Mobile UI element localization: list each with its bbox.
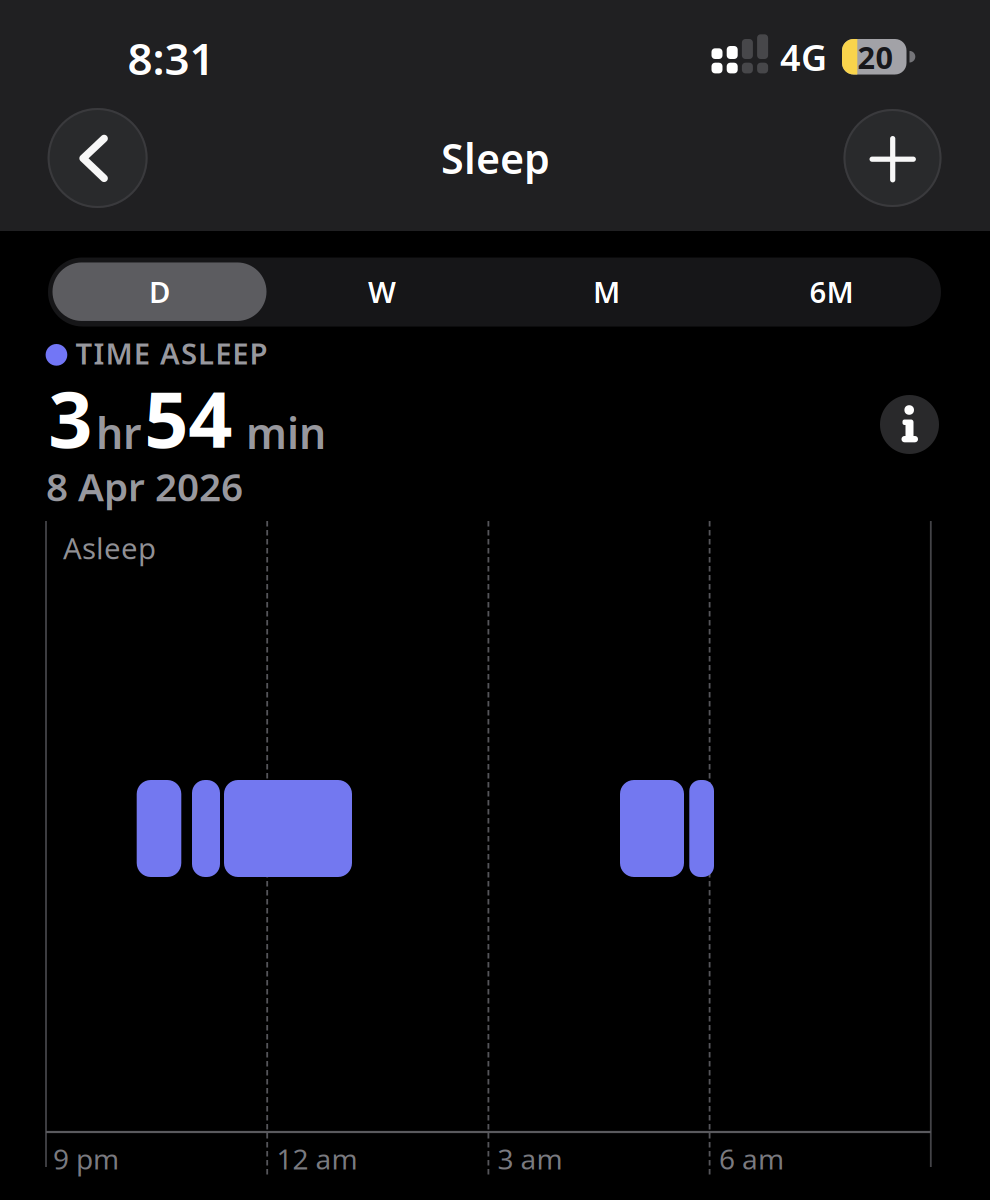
staticText: 3 xyxy=(48,366,92,469)
staticText: Asleep xyxy=(63,528,156,567)
staticText: 8:31 xyxy=(127,29,214,87)
staticText: Sleep xyxy=(441,131,550,185)
staticText: 6 am xyxy=(719,1140,784,1177)
staticText: 54 xyxy=(144,366,232,469)
staticText: M xyxy=(593,272,620,311)
button[interactable]: W xyxy=(282,262,482,321)
button[interactable]: M xyxy=(506,262,706,321)
button[interactable]: D xyxy=(52,262,266,321)
staticText: W xyxy=(368,272,396,311)
button[interactable] xyxy=(48,108,148,208)
staticText: TIME ASLEEP xyxy=(75,334,267,373)
button[interactable]: 6M xyxy=(731,262,931,321)
staticText: 6M xyxy=(809,272,853,311)
button[interactable] xyxy=(880,395,939,454)
staticText: min xyxy=(246,404,326,461)
staticText: 12 am xyxy=(276,1140,357,1177)
staticText: 4G xyxy=(780,33,827,81)
staticText: 20 xyxy=(857,37,893,77)
staticText: 8 Apr 2026 xyxy=(46,460,243,512)
staticText: hr xyxy=(96,404,142,461)
staticText: 3 am xyxy=(497,1140,562,1177)
staticText: 9 pm xyxy=(53,1140,119,1177)
staticText: D xyxy=(149,272,170,311)
button[interactable] xyxy=(843,109,941,207)
